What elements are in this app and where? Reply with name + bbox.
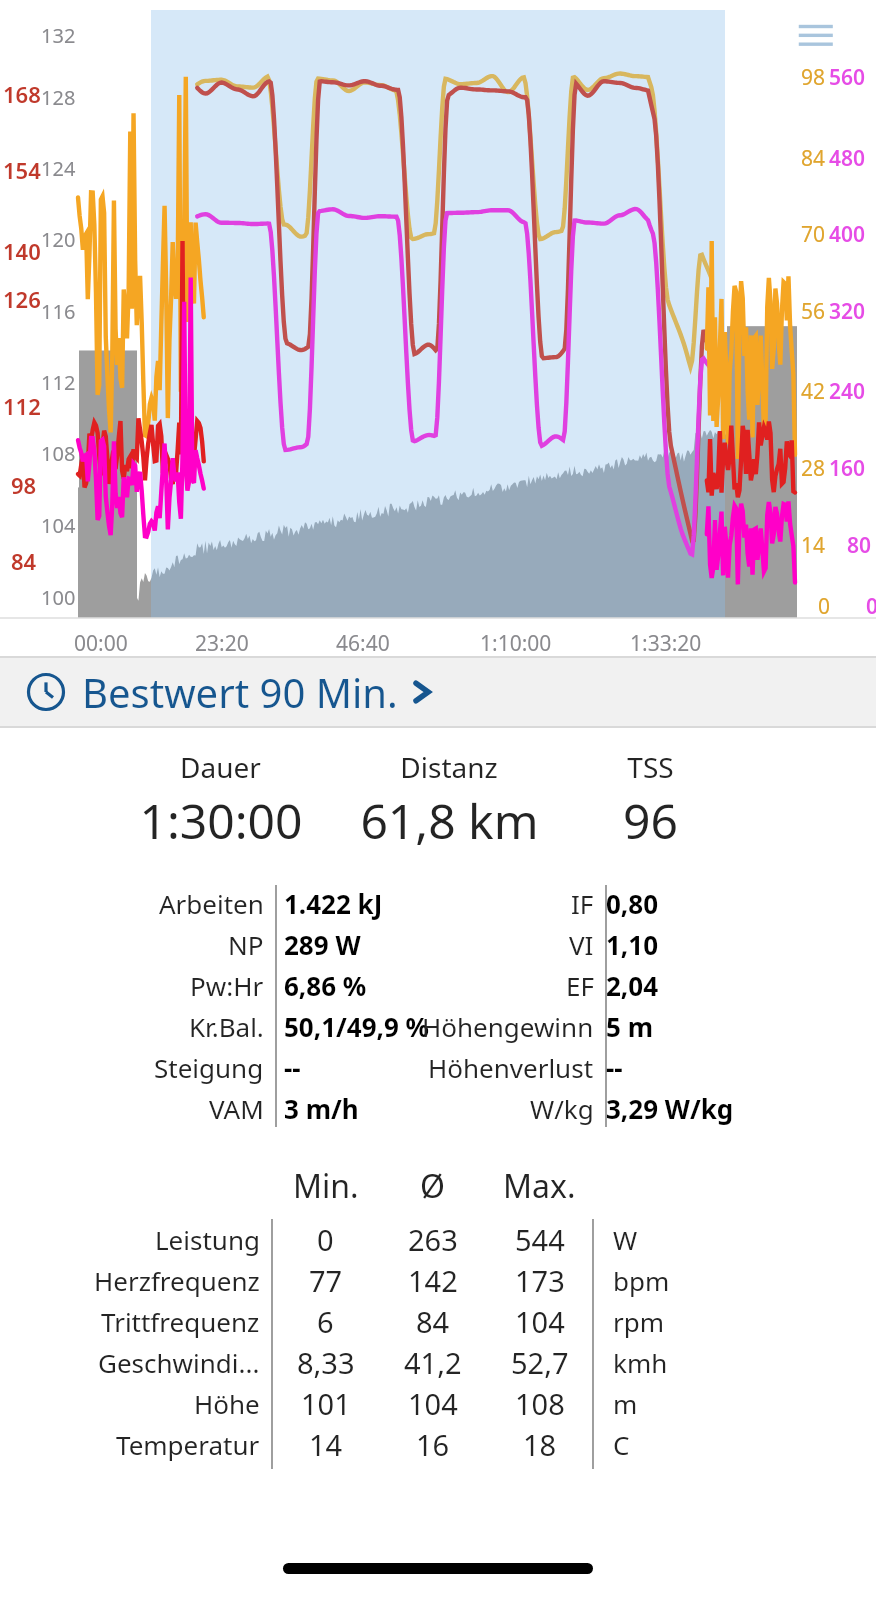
- staticText: 126: [3, 284, 41, 314]
- staticText: 320: [829, 297, 866, 326]
- staticText: kmh: [613, 1345, 668, 1380]
- staticText: 168: [3, 79, 41, 109]
- staticText: 23:20: [195, 629, 249, 658]
- staticText: 42: [801, 377, 826, 406]
- staticText: 46:40: [336, 629, 390, 658]
- staticText: 1:30:00: [139, 788, 303, 853]
- staticText: 100: [41, 584, 76, 611]
- staticText: 41,2: [404, 1343, 462, 1382]
- staticText: EF: [566, 968, 594, 1003]
- staticText: Pw:Hr: [190, 968, 264, 1003]
- staticText: 560: [829, 63, 866, 92]
- staticText: 124: [41, 155, 76, 182]
- staticText: 544: [515, 1220, 565, 1259]
- staticText: 108: [41, 440, 76, 467]
- staticText: Distanz: [400, 748, 498, 786]
- staticText: 112: [3, 391, 41, 421]
- staticText: IF: [571, 886, 594, 921]
- staticText: 14: [801, 531, 826, 560]
- staticText: 0: [317, 1220, 334, 1259]
- staticText: 14: [309, 1425, 343, 1464]
- staticText: 160: [829, 454, 866, 483]
- staticText: 2,04: [606, 968, 659, 1003]
- staticText: 3,29 W/kg: [606, 1091, 734, 1126]
- staticText: 18: [523, 1425, 557, 1464]
- staticText: VAM: [209, 1091, 264, 1126]
- staticText: 6: [317, 1302, 334, 1341]
- staticText: 400: [829, 220, 866, 249]
- staticText: --: [606, 1050, 623, 1085]
- staticText: Kr.Bal.: [189, 1009, 264, 1044]
- staticText: 101: [301, 1384, 351, 1423]
- staticText: 0,80: [606, 886, 659, 921]
- staticText: 1:10:00: [480, 629, 552, 658]
- staticText: 104: [515, 1302, 565, 1341]
- staticText: 132: [41, 22, 76, 49]
- staticText: VI: [569, 927, 594, 962]
- staticText: 6,86 %: [284, 968, 367, 1003]
- staticText: 240: [829, 377, 866, 406]
- staticText: 96: [623, 788, 678, 853]
- staticText: 80: [847, 531, 872, 560]
- staticText: Temperatur: [116, 1427, 260, 1462]
- staticText: 104: [408, 1384, 458, 1423]
- staticText: 116: [41, 298, 76, 325]
- staticText: 70: [801, 220, 826, 249]
- staticText: 1,10: [606, 927, 659, 962]
- staticText: 142: [408, 1261, 458, 1300]
- staticText: Bestwert 90 Min.: [82, 665, 398, 719]
- staticText: 77: [309, 1261, 343, 1300]
- staticText: 00:00: [74, 629, 128, 658]
- staticText: 84: [801, 144, 826, 173]
- staticText: W: [613, 1222, 638, 1257]
- staticText: 120: [41, 226, 76, 253]
- staticText: 98: [11, 470, 37, 500]
- staticText: 289 W: [284, 927, 361, 962]
- staticText: Höhe: [194, 1386, 260, 1421]
- staticText: rpm: [613, 1304, 665, 1339]
- staticText: 61,8 km: [360, 788, 539, 853]
- button[interactable]: Menu: [796, 18, 842, 52]
- staticText: 1:33:20: [630, 629, 702, 658]
- staticText: Steigung: [154, 1050, 264, 1085]
- staticText: 173: [515, 1261, 565, 1300]
- staticText: 84: [11, 546, 37, 576]
- staticText: 154: [3, 155, 41, 185]
- staticText: Geschwindi...: [98, 1345, 260, 1380]
- staticText: 263: [408, 1220, 458, 1259]
- staticText: 1.422 kJ: [284, 886, 383, 921]
- staticText: 28: [801, 454, 826, 483]
- staticText: W/kg: [530, 1091, 594, 1126]
- staticText: 480: [829, 144, 866, 173]
- staticText: Max.: [503, 1164, 576, 1208]
- staticText: C: [613, 1427, 630, 1462]
- staticText: 140: [3, 236, 41, 266]
- staticText: Herzfrequenz: [94, 1263, 260, 1298]
- staticText: NP: [228, 927, 264, 962]
- staticText: 0: [866, 592, 876, 621]
- staticText: 16: [416, 1425, 450, 1464]
- staticText: 3 m/h: [284, 1091, 359, 1126]
- staticText: 56: [801, 297, 826, 326]
- staticText: 5 m: [606, 1009, 653, 1044]
- staticText: 128: [41, 84, 76, 111]
- staticText: 112: [41, 369, 76, 396]
- staticText: TSS: [627, 748, 674, 786]
- staticText: Höhenverlust: [428, 1050, 594, 1085]
- staticText: 50,1/49,9 %: [284, 1009, 430, 1044]
- staticText: m: [613, 1386, 638, 1421]
- staticText: 8,33: [297, 1343, 355, 1382]
- staticText: bpm: [613, 1263, 670, 1298]
- staticText: 0: [818, 592, 831, 621]
- staticText: --: [284, 1050, 301, 1085]
- staticText: 104: [41, 512, 76, 539]
- staticText: Ø: [420, 1164, 445, 1208]
- staticText: Leistung: [155, 1222, 260, 1257]
- staticText: 84: [416, 1302, 450, 1341]
- staticText: Höhengewinn: [422, 1009, 594, 1044]
- staticText: 108: [515, 1384, 565, 1423]
- button[interactable]: Bestwert 90 Min.: [0, 658, 876, 726]
- staticText: Min.: [293, 1164, 359, 1208]
- staticText: Trittfrequenz: [101, 1304, 260, 1339]
- staticText: Arbeiten: [159, 886, 264, 921]
